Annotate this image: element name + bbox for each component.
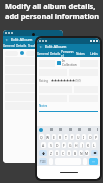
staticText: R [59,135,62,140]
staticText: K [87,143,90,148]
staticText: Q [40,135,43,140]
staticText: A [42,143,45,148]
staticText: Notes [39,104,48,108]
staticText: W [46,135,50,140]
staticText: Tracks [28,44,38,48]
other: Back [5,38,9,42]
staticText: J [82,143,83,148]
staticText: O [89,135,92,140]
staticText: C [62,151,65,156]
staticText: Edit Album [11,37,33,43]
staticText: M [85,151,89,156]
staticText: V [68,151,71,156]
staticText: P [95,135,98,140]
staticText: In Collection [62,59,78,67]
staticText: E [53,135,55,140]
staticText: ?123 [40,160,46,164]
staticText: L [93,143,95,148]
staticText: General [3,44,15,48]
staticText: Links [90,52,98,56]
staticText: Notes [76,52,85,56]
staticText: H [75,143,78,148]
staticText: Personnel [61,50,74,57]
staticText: F [63,143,65,148]
staticText: N [80,151,83,156]
other: Back [39,45,43,49]
staticText: Details [50,52,61,56]
staticText: B [74,151,77,156]
staticText: X [56,151,58,156]
staticText: T [65,135,67,140]
staticText: U [77,135,80,140]
staticText: Details [16,44,27,48]
staticText: Y [71,135,73,140]
staticText: Links [53,44,61,48]
staticText: I [83,135,85,140]
staticText: Notes [41,44,50,48]
staticText: D [56,143,59,148]
staticText: Modify all album details, [5,1,96,11]
staticText: Rating [39,79,49,83]
staticText: add personal information [5,11,100,21]
staticText: General [37,52,49,56]
staticText: S [50,143,52,148]
staticText: G [69,143,72,148]
staticText: Z [50,151,52,156]
staticText: Edit Album [45,44,67,50]
